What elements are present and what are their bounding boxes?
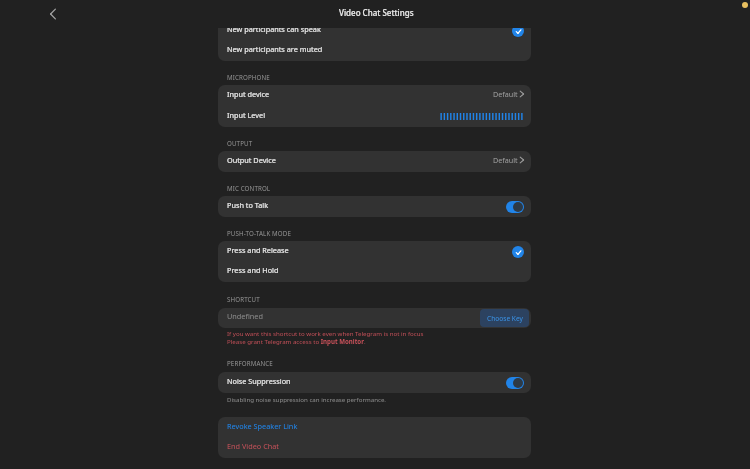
staticText: End Video Chat [227,441,279,451]
button[interactable]: Press and Release [218,241,531,262]
staticText: OUTPUT [227,139,253,147]
button[interactable]: New participants are muted [218,41,531,61]
button[interactable]: Back [43,4,63,24]
staticText: Press and Hold [227,265,279,275]
staticText: Choose Key [487,314,523,323]
staticText: Default [493,155,518,165]
staticText: Revoke Speaker Link [227,421,298,431]
staticText: MICROPHONE [227,73,270,81]
button[interactable]: New participants can speak [218,28,531,41]
staticText: Undefined [227,311,263,321]
staticText: Push to Talk [227,200,269,210]
staticText: New participants are muted [227,44,323,54]
staticText: PERFORMANCE [227,359,273,367]
staticText: SHORTCUT [227,295,260,303]
staticText: Default [493,89,518,99]
staticText: PUSH-TO-TALK MODE [227,229,291,237]
button[interactable]: Choose Key [480,309,529,327]
button[interactable]: Press and Hold [218,262,531,282]
button[interactable]: End Video Chat [218,438,531,458]
staticText: MIC CONTROL [227,184,271,192]
button[interactable]: Input device [218,85,531,106]
staticText: Input device [227,89,270,99]
staticText: Output Device [227,155,276,165]
staticText: Please grant Telegram access to Input Mo… [227,337,366,345]
staticText: Noise Suppression [227,376,291,386]
button[interactable]: Input Level [218,106,531,127]
button[interactable]: Revoke Speaker Link [218,417,531,438]
staticText: If you want this shortcut to work even w… [227,329,424,337]
staticText: Press and Release [227,245,289,255]
button[interactable]: Noise Suppression [218,372,531,393]
staticText: Video Chat Settings [339,7,414,18]
button[interactable]: Output Device [218,151,531,172]
button[interactable]: Push to Talk [218,196,531,217]
staticText: New participants can speak [227,28,321,34]
staticText: Disabling noise suppression can increase… [227,395,387,403]
staticText: Input Level [227,110,266,120]
